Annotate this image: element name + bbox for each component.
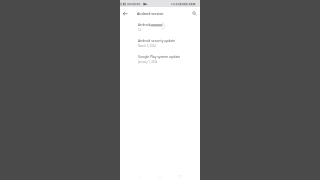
staticText: January 1, 2024 <box>138 60 158 64</box>
button[interactable]: Search <box>189 7 200 18</box>
staticText: Google Play system update <box>138 54 181 58</box>
staticText: Android security update <box>138 38 176 42</box>
staticText: Android version <box>138 22 163 26</box>
button[interactable]: Google Play system update <box>120 51 200 67</box>
button[interactable]: Back <box>120 7 131 18</box>
button[interactable]: Android security update <box>120 35 200 51</box>
staticText: 14 <box>138 28 142 32</box>
button[interactable]: Android version <box>120 19 200 35</box>
staticText: Android version <box>137 11 164 16</box>
staticText: March 5, 2024 <box>138 44 156 48</box>
